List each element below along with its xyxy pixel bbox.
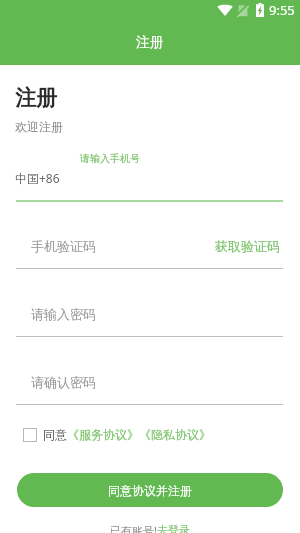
staticText: 同意: [43, 427, 67, 442]
staticText: 欢迎注册: [15, 119, 63, 134]
button[interactable]: 请确认密码: [16, 338, 283, 404]
staticText: 请输入手机号: [80, 152, 140, 165]
staticText: 获取验证码: [215, 238, 280, 254]
staticText: 同意协议并注册: [108, 483, 192, 498]
button[interactable]: 同意: [20, 423, 214, 446]
staticText: 手机验证码: [31, 238, 96, 254]
staticText: 去登录: [157, 523, 190, 533]
button[interactable]: 请输入手机号: [16, 145, 283, 200]
staticText: 请输入密码: [31, 306, 96, 322]
staticText: 注册: [136, 34, 164, 52]
staticText: 注册: [15, 85, 57, 111]
staticText: 中国+86: [15, 170, 60, 186]
button[interactable]: 获取验证码: [209, 230, 286, 262]
button[interactable]: 手机验证码: [16, 202, 283, 268]
button[interactable]: 同意协议并注册: [17, 473, 283, 507]
staticText: 已有账号!: [110, 523, 157, 533]
button[interactable]: 请输入密码: [16, 270, 283, 336]
staticText: 《服务协议》《隐私协议》: [67, 427, 211, 442]
staticText: 9:55: [269, 1, 295, 19]
staticText: 请确认密码: [31, 374, 96, 390]
button[interactable]: 去登录: [157, 523, 190, 533]
